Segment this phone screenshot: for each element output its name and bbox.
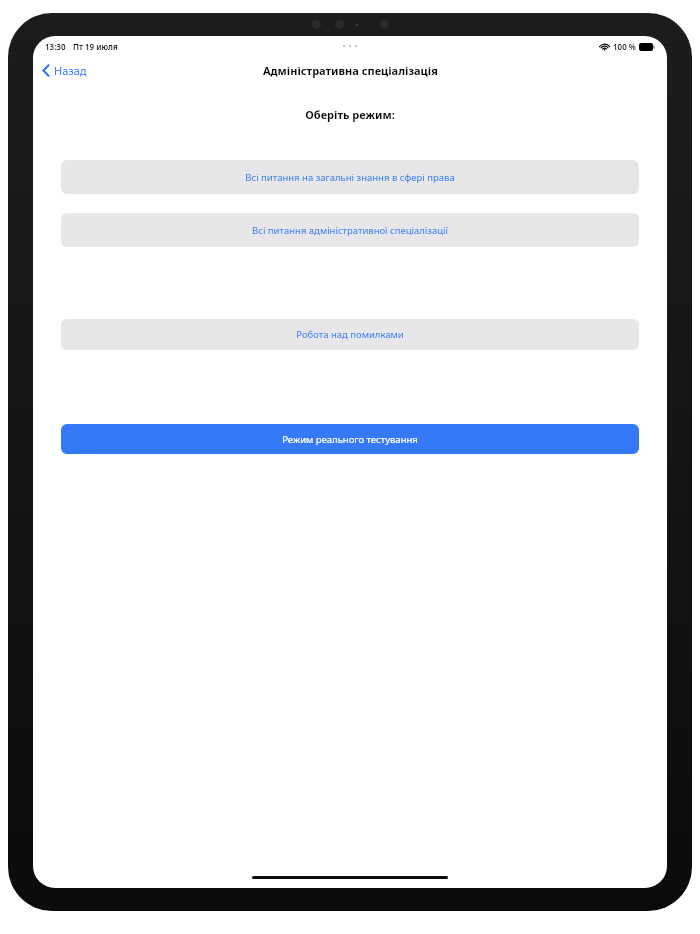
- button[interactable]: Назад: [33, 59, 97, 82]
- button[interactable]: Режим реального тестування: [61, 424, 639, 454]
- staticText: Назад: [54, 63, 87, 78]
- staticText: Оберіть режим:: [49, 107, 651, 122]
- staticText: 13:30: [45, 41, 66, 52]
- button[interactable]: Робота над помилками: [61, 319, 639, 350]
- staticText: Режим реального тестування: [282, 433, 418, 446]
- staticText: Всі питання на загальні знання в сфері п…: [245, 171, 455, 184]
- button[interactable]: Всі питання на загальні знання в сфері п…: [61, 160, 639, 194]
- staticText: Пт 19 июля: [73, 41, 118, 52]
- staticText: Адміністративна спеціалізація: [263, 63, 438, 78]
- staticText: Робота над помилками: [296, 328, 404, 341]
- staticText: Всі питання адміністративної спеціалізац…: [252, 224, 448, 237]
- staticText: 100 %: [613, 41, 636, 52]
- button[interactable]: Всі питання адміністративної спеціалізац…: [61, 213, 639, 247]
